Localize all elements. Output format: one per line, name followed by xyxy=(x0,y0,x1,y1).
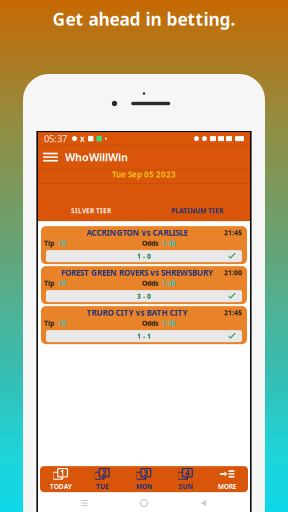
button[interactable]: 2 xyxy=(82,466,123,492)
staticText: 3 - 0 xyxy=(137,292,151,301)
staticText: TODAY xyxy=(50,482,72,491)
staticText: x xyxy=(80,133,85,144)
staticText: FOREST GREEN ROVERS vs SHREWSBURY xyxy=(61,267,213,278)
staticText: 1 - 1 xyxy=(137,332,151,341)
button[interactable]: MORE xyxy=(206,466,248,492)
button[interactable]: Home xyxy=(131,495,157,511)
staticText: 2 xyxy=(102,467,107,478)
staticText: 1X xyxy=(58,319,66,328)
staticText: 1X xyxy=(58,279,66,288)
staticText: 4 xyxy=(185,467,190,478)
staticText: 21:45 xyxy=(224,228,242,237)
staticText: MORE xyxy=(218,482,237,491)
staticText: SUN xyxy=(179,482,193,491)
staticText: 21:45 xyxy=(224,308,242,317)
staticText: 1X xyxy=(58,239,66,248)
staticText: Tue Sep 05 2023 xyxy=(112,169,176,180)
staticText: PLATINUM TIER xyxy=(171,206,223,215)
staticText: 1.35 xyxy=(162,319,176,328)
staticText: TRURO CITY vs BATH CITY xyxy=(86,307,187,318)
button[interactable]: Back xyxy=(190,495,216,511)
button[interactable]: 1 xyxy=(40,466,82,492)
button[interactable]: Menu xyxy=(42,147,59,167)
staticText: Get ahead in betting. xyxy=(52,7,235,30)
staticText: MON xyxy=(136,482,152,491)
button[interactable]: SILVER TIER xyxy=(38,183,144,221)
button[interactable]: Recents xyxy=(71,495,97,511)
button[interactable]: 3 xyxy=(123,466,165,492)
staticText: Odds xyxy=(142,239,158,248)
staticText: 1.40 xyxy=(162,279,176,288)
staticText: 1.40 xyxy=(162,239,176,248)
staticText: Tip xyxy=(44,319,54,328)
button[interactable]: 4 xyxy=(165,466,206,492)
button[interactable]: PLATINUM TIER xyxy=(144,183,250,221)
staticText: 21:00 xyxy=(224,268,242,277)
staticText: Odds xyxy=(142,279,158,288)
staticText: 3 xyxy=(143,467,148,478)
staticText: WhoWillWin xyxy=(65,150,128,164)
button[interactable]: ACCRINGTON vs CARLISLE xyxy=(41,226,247,264)
staticText: Tip xyxy=(44,239,54,248)
staticText: 05:37 xyxy=(44,132,67,145)
staticText: ACCRINGTON vs CARLISLE xyxy=(86,227,187,238)
staticText: Tip xyxy=(44,279,54,288)
staticText: 1 - 0 xyxy=(137,252,151,261)
button[interactable]: FOREST GREEN ROVERS vs SHREWSBURY xyxy=(41,266,247,304)
staticText: TUE xyxy=(96,482,109,491)
staticText: SILVER TIER xyxy=(71,206,111,215)
staticText: Odds xyxy=(142,319,158,328)
button[interactable]: TRURO CITY vs BATH CITY xyxy=(41,306,247,344)
staticText: 1 xyxy=(60,467,65,478)
